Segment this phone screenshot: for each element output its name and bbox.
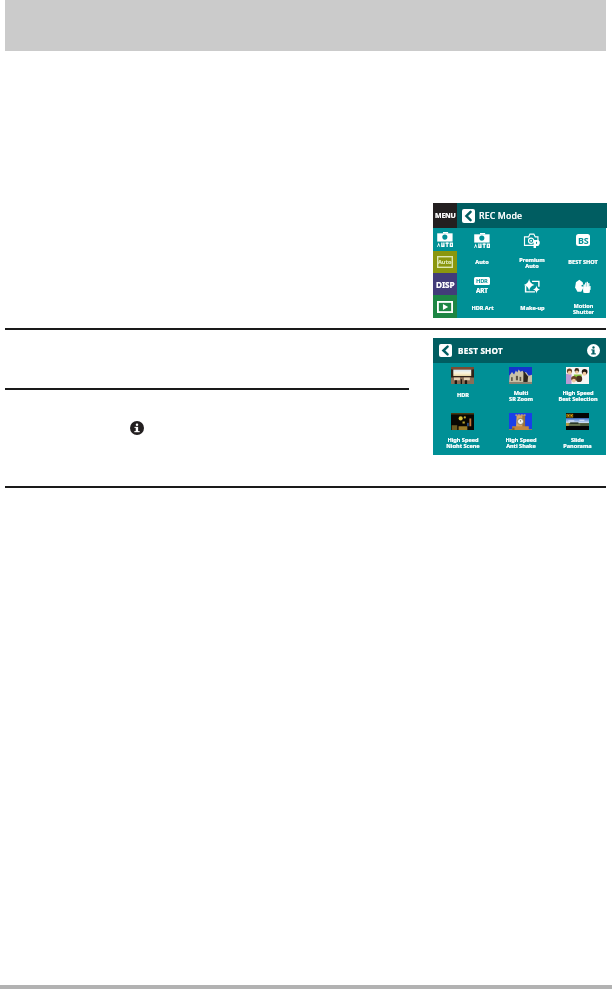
staticText: P — [533, 236, 540, 248]
button[interactable]: HDR — [457, 274, 507, 318]
button[interactable]: High Speed Anti Shake — [492, 410, 549, 451]
staticText: BEST SHOT — [568, 258, 598, 266]
button[interactable]: BS — [558, 228, 608, 272]
button[interactable]: Auto — [457, 228, 507, 272]
staticText: Make-up — [520, 304, 545, 312]
button[interactable]: Information — [587, 344, 600, 357]
button[interactable]: MENU — [433, 203, 457, 228]
staticText: BS — [578, 234, 589, 246]
button[interactable]: Motion Shutter — [558, 274, 608, 318]
staticText: Auto — [475, 258, 489, 266]
button[interactable]: Back — [462, 209, 475, 223]
button[interactable]: Back — [439, 344, 452, 357]
button[interactable]: Slide Panorama — [549, 410, 606, 451]
staticText: REC Mode — [479, 210, 523, 222]
button[interactable]: Play — [433, 295, 457, 318]
staticText: Multi SR Zoom — [509, 389, 533, 401]
button[interactable]: Make-up — [507, 274, 557, 318]
staticText: High Speed Night Scene — [446, 436, 480, 448]
staticText: HDR — [476, 277, 488, 285]
staticText: BEST SHOT — [458, 345, 503, 356]
staticText: DISP — [436, 279, 455, 290]
staticText: HDR Art — [471, 304, 494, 312]
staticText: HDR — [457, 391, 469, 399]
button[interactable]: High Speed Best Selection — [549, 364, 606, 404]
staticText: Auto — [438, 258, 452, 266]
button[interactable]: Information — [130, 421, 144, 435]
staticText: ART — [476, 286, 488, 295]
button[interactable]: Auto camera — [433, 228, 457, 251]
staticText: Slide Panorama — [563, 436, 592, 448]
button[interactable]: HDR — [434, 364, 491, 404]
button[interactable]: P — [507, 228, 557, 272]
staticText: Motion Shutter — [573, 302, 594, 314]
button[interactable]: Auto — [433, 251, 457, 273]
staticText: Premium Auto — [519, 256, 545, 268]
staticText: High Speed Anti Shake — [505, 436, 537, 448]
button[interactable]: Multi SR Zoom — [492, 364, 549, 404]
staticText: MENU — [435, 211, 456, 221]
button[interactable]: High Speed Night Scene — [434, 410, 491, 451]
staticText: High Speed Best Selection — [558, 389, 598, 401]
button[interactable]: DISP — [433, 273, 457, 295]
